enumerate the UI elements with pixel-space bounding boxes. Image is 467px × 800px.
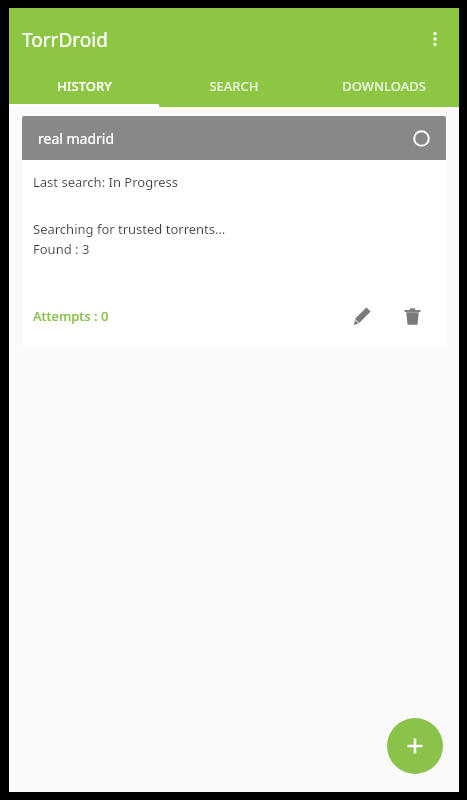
button[interactable]: DOWNLOADS: [309, 65, 459, 107]
button[interactable]: Edit: [342, 296, 382, 336]
button[interactable]: SEARCH: [159, 65, 309, 107]
button[interactable]: real madrid: [22, 116, 446, 348]
staticText: real madrid: [38, 129, 115, 148]
staticText: Searching for trusted torrents…: [33, 220, 226, 238]
staticText: HISTORY: [57, 77, 112, 95]
staticText: TorrDroid: [22, 27, 108, 53]
button[interactable]: Add new search: [387, 718, 443, 774]
staticText: Attempts : 0: [33, 307, 109, 325]
button[interactable]: HISTORY: [9, 65, 159, 107]
button[interactable]: Search status: [406, 123, 436, 153]
staticText: DOWNLOADS: [342, 77, 426, 95]
staticText: Last search: In Progress: [33, 173, 179, 191]
staticText: Found : 3: [33, 240, 90, 258]
button[interactable]: More options: [415, 19, 455, 59]
staticText: SEARCH: [209, 77, 259, 95]
button[interactable]: Delete: [392, 296, 432, 336]
